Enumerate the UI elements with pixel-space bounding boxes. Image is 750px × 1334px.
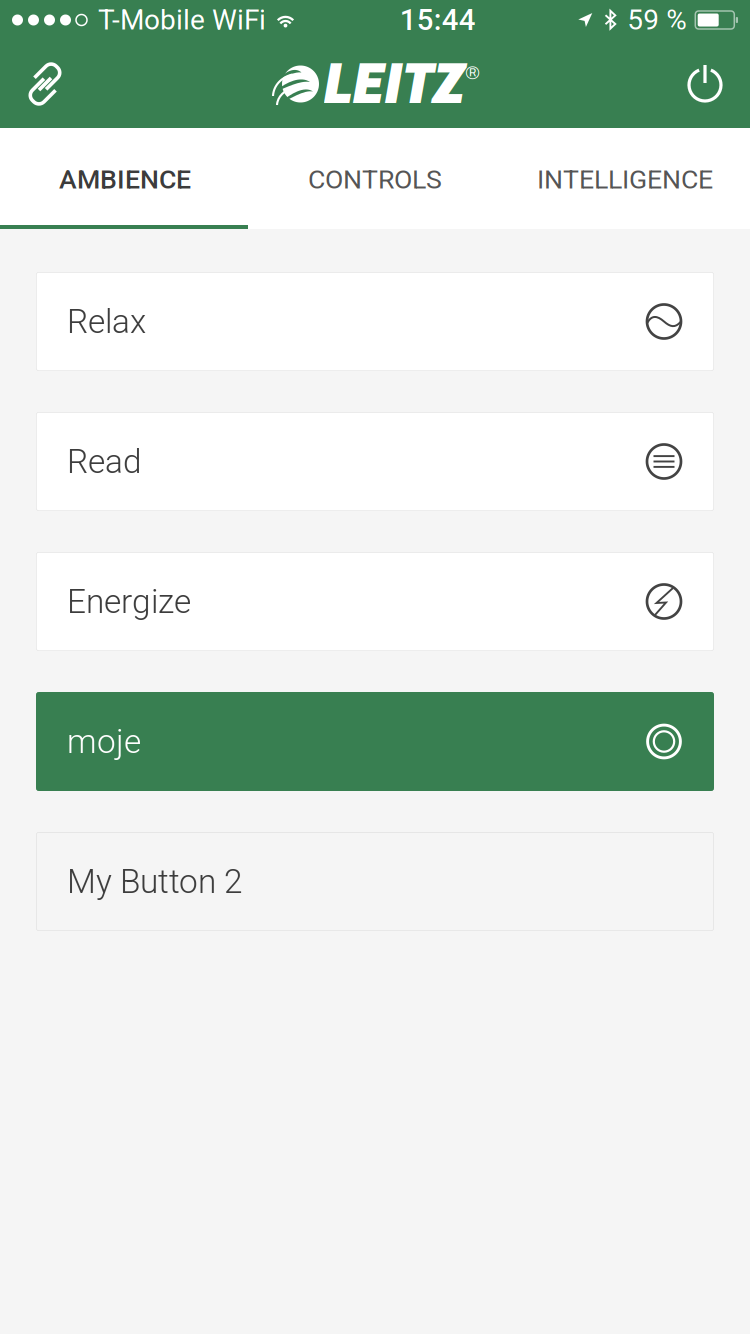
staticText: AMBIENCE [59,164,191,195]
staticText: Read [67,442,142,481]
button[interactable]: CONTROLS [250,128,500,225]
button[interactable]: Energize [36,552,714,651]
staticText: Relax [67,302,146,341]
staticText: CONTROLS [308,164,442,195]
button[interactable]: Power [660,40,750,128]
staticText: T-Mobile WiFi [98,4,266,36]
staticText: ® [465,63,479,83]
staticText: INTELLIGENCE [537,164,713,195]
button[interactable]: INTELLIGENCE [500,128,750,225]
staticText: Energize [67,582,191,621]
staticText: 59 % [627,4,687,36]
button[interactable]: Relax [36,272,714,371]
button[interactable]: moje [36,692,714,791]
staticText: My Button 2 [67,862,242,901]
button[interactable]: My Button 2 [36,832,714,931]
button[interactable]: Link [0,40,90,128]
staticText: 15:44 [400,3,476,37]
button[interactable]: AMBIENCE [0,128,250,225]
staticText: moje [67,722,141,761]
staticText: LEITZ [323,53,464,115]
button[interactable]: Read [36,412,714,511]
